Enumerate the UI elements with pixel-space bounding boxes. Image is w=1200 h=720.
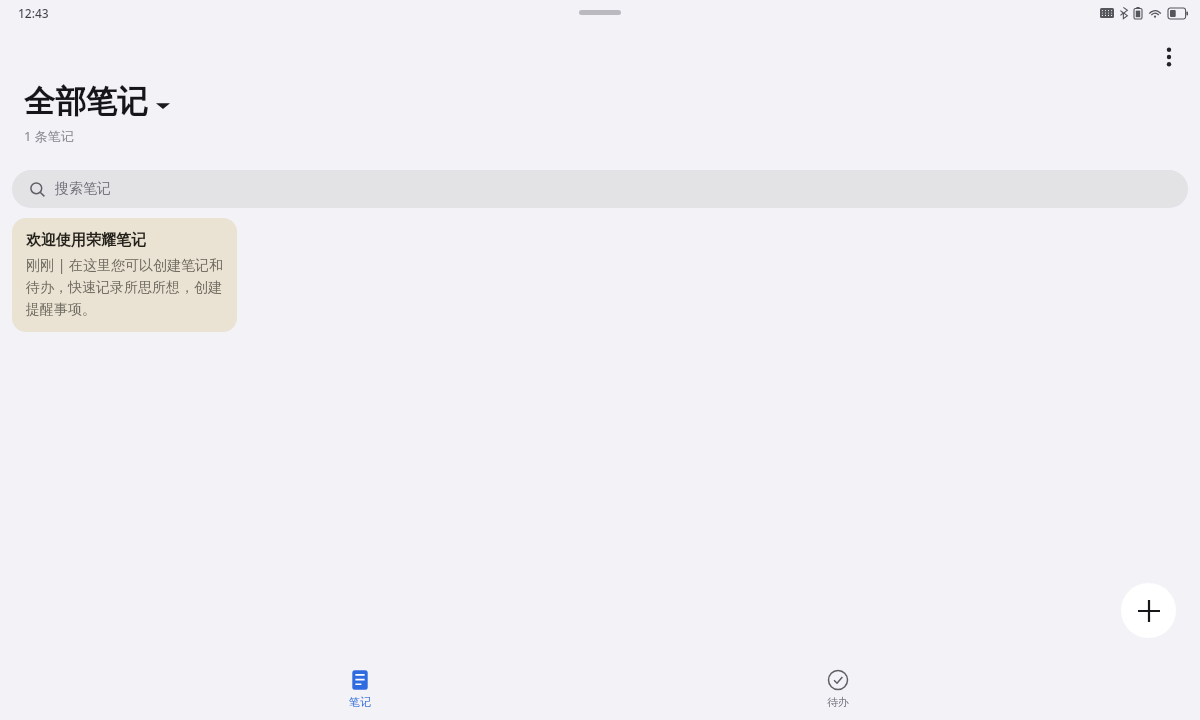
button[interactable]: New note: [1121, 583, 1176, 638]
button[interactable]: More options: [1144, 32, 1194, 82]
button[interactable]: 笔记: [290, 665, 430, 713]
button[interactable]: 欢迎使用荣耀笔记: [12, 218, 237, 332]
staticText: 1 条笔记: [24, 127, 74, 145]
staticText: 全部笔记: [24, 82, 148, 121]
staticText: 12:43: [18, 5, 49, 21]
staticText: 待办: [827, 695, 849, 709]
button[interactable]: 待办: [768, 665, 908, 713]
staticText: 欢迎使用荣耀笔记: [26, 231, 146, 250]
staticText: 刚刚 | 在这里您可以创建笔记和待办，快速记录所思所想，创建提醒事项。: [26, 255, 223, 319]
button[interactable]: 搜索笔记: [12, 170, 1188, 208]
staticText: 搜索笔记: [55, 180, 111, 198]
staticText: 笔记: [349, 695, 371, 709]
